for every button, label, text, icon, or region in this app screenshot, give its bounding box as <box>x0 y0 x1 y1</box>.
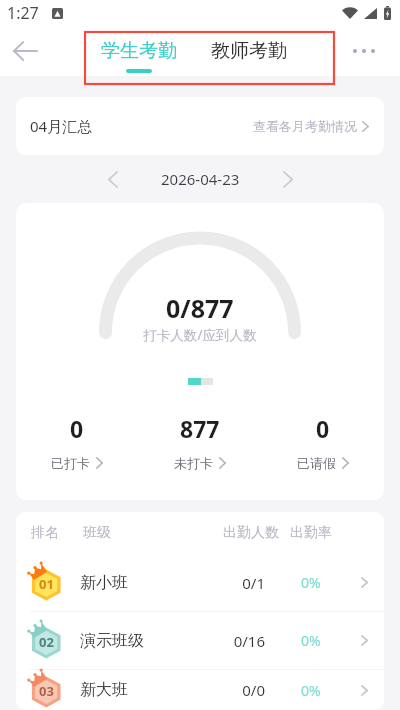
staticText: 0% <box>301 631 321 650</box>
staticText: 03 <box>39 682 54 700</box>
staticText: 班级 <box>83 524 111 542</box>
staticText: 04月汇总 <box>30 116 93 136</box>
staticText: 0% <box>301 573 321 592</box>
staticText: 查看各月考勤情况 <box>253 118 357 134</box>
button[interactable]: 03 <box>16 670 384 710</box>
staticText: 已请假 <box>297 455 336 471</box>
staticText: 0/877 <box>166 291 234 325</box>
staticText: 01 <box>39 575 54 593</box>
staticText: 0% <box>301 681 321 700</box>
button[interactable]: 02 <box>16 612 384 669</box>
button[interactable]: 0 <box>16 413 138 471</box>
staticText: 新小班 <box>80 573 128 593</box>
staticText: 未打卡 <box>174 455 213 471</box>
button[interactable]: Back <box>4 30 46 72</box>
button[interactable]: Next day <box>270 161 306 197</box>
staticText: 1:27 <box>7 2 39 24</box>
staticText: 0 <box>70 413 84 444</box>
button[interactable]: 教师考勤 <box>205 32 293 76</box>
staticText: 排名 <box>31 524 59 542</box>
staticText: 教师考勤 <box>211 39 287 63</box>
staticText: 0 <box>316 413 330 444</box>
button[interactable]: 01 <box>16 554 384 611</box>
staticText: 0/0 <box>205 680 265 700</box>
staticText: 新大班 <box>80 680 128 700</box>
staticText: 02 <box>39 633 54 651</box>
staticText: 877 <box>180 413 220 444</box>
button[interactable]: 04月汇总 <box>16 97 384 155</box>
button[interactable]: More options <box>344 31 384 71</box>
staticText: 演示班级 <box>80 631 144 651</box>
button[interactable]: 877 <box>138 413 261 471</box>
staticText: 0/16 <box>205 631 265 651</box>
staticText: 0/1 <box>205 573 265 593</box>
staticText: 学生考勤 <box>101 39 177 63</box>
button[interactable]: 0 <box>261 413 384 471</box>
button[interactable]: Previous day <box>95 161 131 197</box>
button[interactable]: 学生考勤 <box>95 32 183 76</box>
staticText: 出勤人数 <box>223 524 279 542</box>
staticText: 打卡人数/应到人数 <box>143 325 257 344</box>
staticText: 出勤率 <box>290 524 332 542</box>
staticText: 2026-04-23 <box>161 169 240 189</box>
staticText: 已打卡 <box>51 455 90 471</box>
